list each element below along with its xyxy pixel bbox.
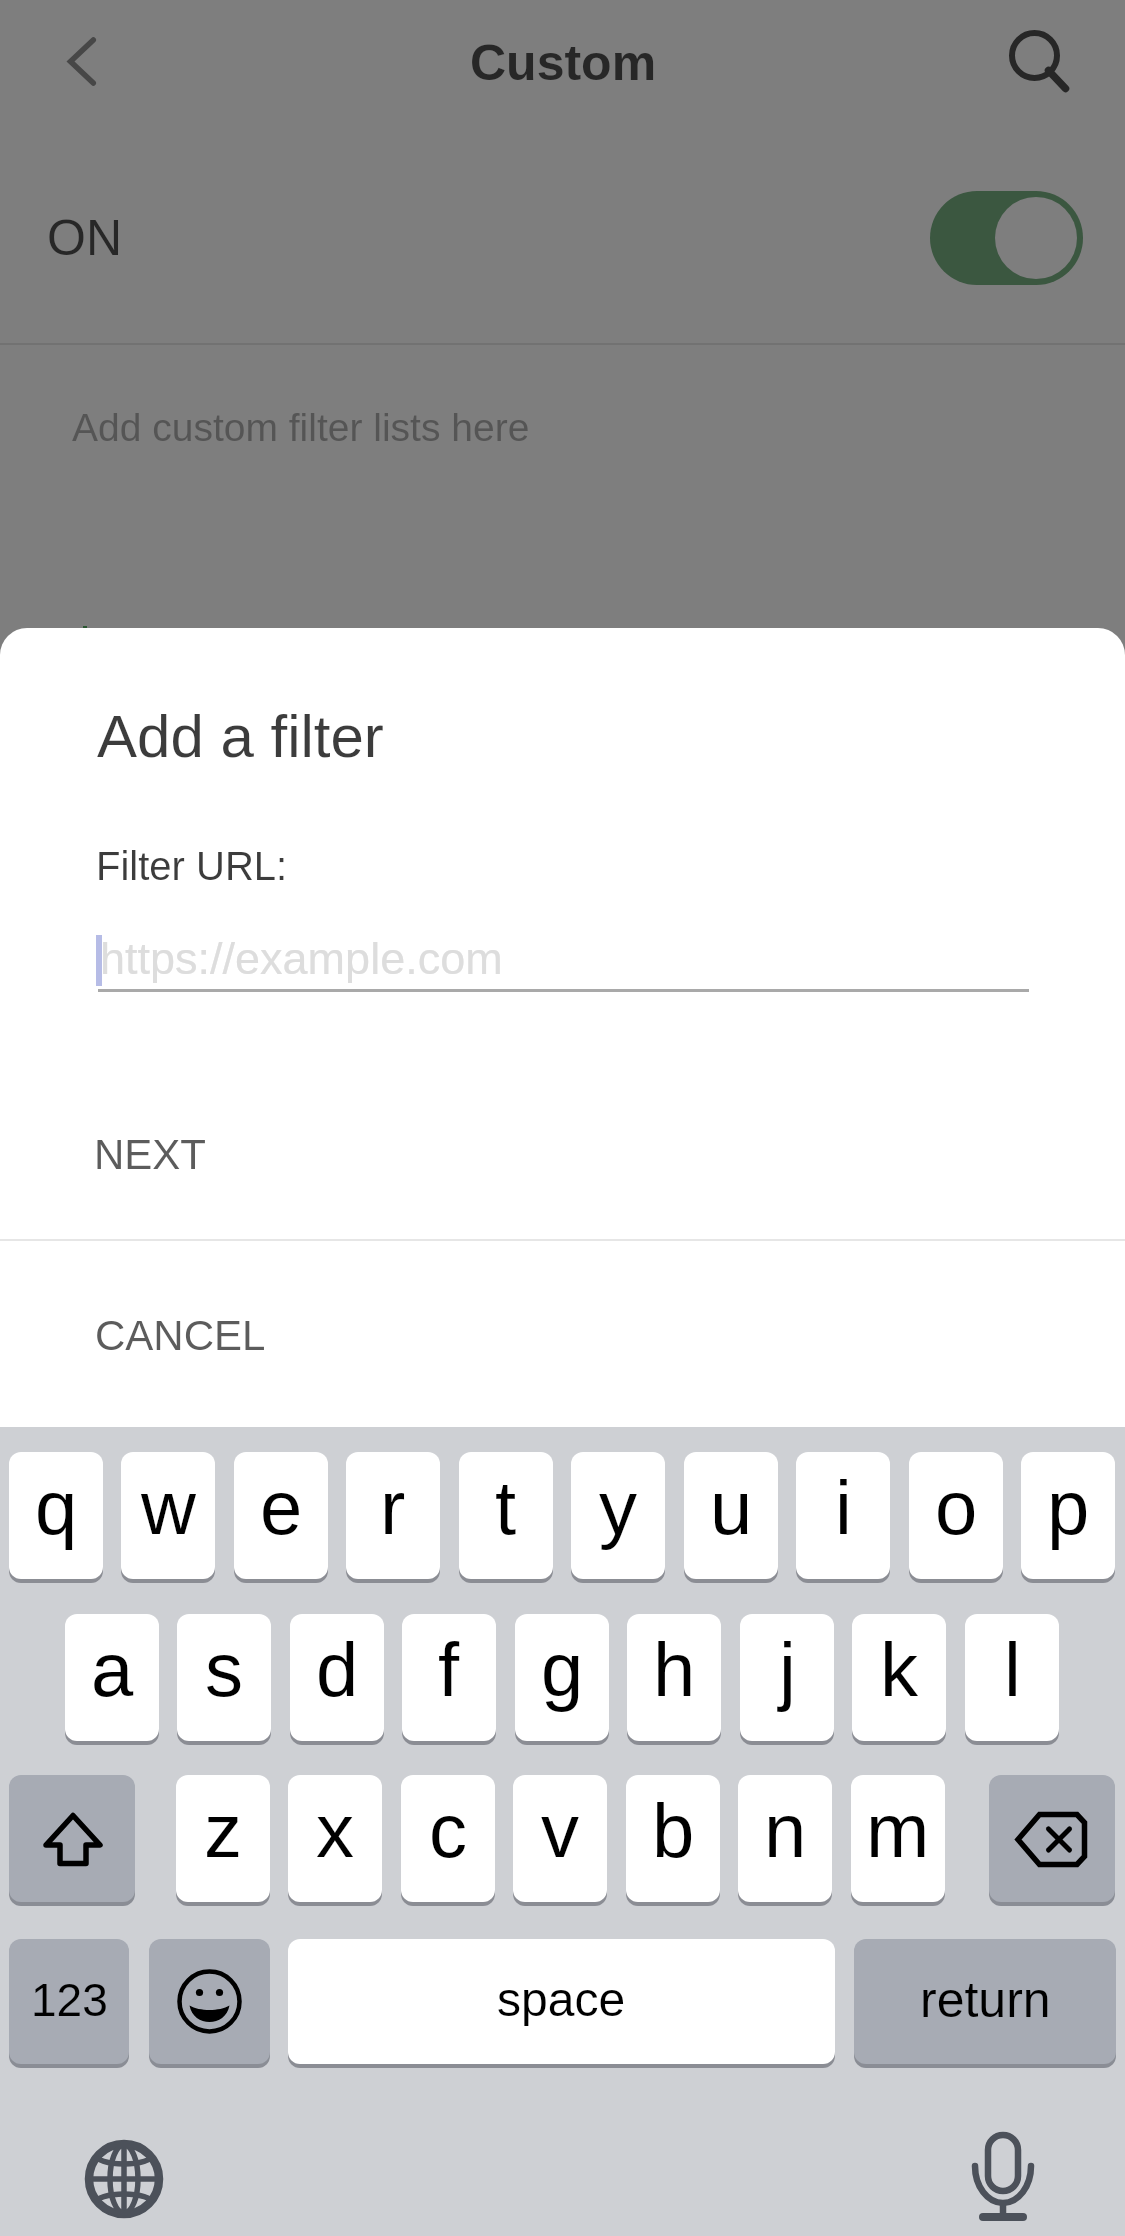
staticText: i [835,1465,852,1550]
staticText: https://example.com [100,933,503,983]
staticText: z [204,1788,242,1873]
staticText: q [35,1465,78,1550]
button[interactable]: s [177,1614,271,1741]
button[interactable]: f [402,1614,496,1741]
staticText: e [260,1465,303,1550]
staticText: Add a filter [97,703,384,770]
button[interactable]: h [627,1614,721,1741]
button[interactable]: a [65,1614,159,1741]
button[interactable]: m [851,1775,945,1902]
staticText: a [91,1627,134,1712]
button[interactable]: Add custom filter lists here [0,345,1125,485]
staticText: c [429,1788,467,1873]
staticText: h [653,1627,696,1712]
button[interactable]: p [1021,1452,1115,1579]
staticText: 123 [31,1974,108,2025]
staticText: CANCEL [95,1312,266,1359]
button[interactable]: l [965,1614,1059,1741]
button[interactable]: e [234,1452,328,1579]
button[interactable]: Next keyboard [64,2119,184,2236]
button[interactable]: x [288,1775,382,1902]
button[interactable]: r [346,1452,440,1579]
staticText: m [866,1788,930,1873]
button[interactable]: y [571,1452,665,1579]
button[interactable]: Backspace [989,1775,1115,1902]
staticText: s [205,1627,243,1712]
button[interactable]: NEXT [0,1098,1125,1239]
button[interactable]: i [796,1452,890,1579]
button[interactable]: g [515,1614,609,1741]
staticText: k [880,1627,918,1712]
staticText: f [438,1627,460,1712]
staticText: o [935,1465,978,1550]
button[interactable]: Back [12,7,122,117]
staticText: t [495,1465,517,1550]
button[interactable]: b [626,1775,720,1902]
staticText: ON [47,210,122,266]
staticText: Custom [470,35,657,91]
staticText: w [141,1465,196,1550]
button[interactable]: c [401,1775,495,1902]
button[interactable]: Enable filter list [905,166,1108,310]
button[interactable]: n [738,1775,832,1902]
staticText: l [1004,1627,1021,1712]
staticText: j [779,1627,796,1712]
button[interactable]: t [459,1452,553,1579]
staticText: Add custom filter lists here [72,406,530,450]
staticText: space [497,1973,626,2027]
button[interactable]: Emoji keyboard [149,1939,270,2064]
button[interactable]: Voice dictation [943,2115,1063,2235]
staticText: g [541,1627,584,1712]
button[interactable]: j [740,1614,834,1741]
button[interactable]: o [909,1452,1003,1579]
button[interactable]: v [513,1775,607,1902]
staticText: v [541,1788,579,1873]
staticText: return [920,1972,1051,2028]
staticText: d [316,1627,359,1712]
button[interactable]: Search [980,0,1090,110]
button[interactable]: u [684,1452,778,1579]
staticText: y [599,1465,637,1550]
staticText: n [764,1788,807,1873]
button[interactable]: k [852,1614,946,1741]
button[interactable]: d [290,1614,384,1741]
button[interactable]: w [121,1452,215,1579]
staticText: r [380,1465,406,1550]
staticText: x [316,1788,354,1873]
button[interactable]: space [288,1939,835,2064]
staticText: Filter URL: [96,844,288,889]
staticText: b [652,1788,695,1873]
button[interactable]: Shift [9,1775,135,1902]
staticText: u [710,1465,753,1550]
button[interactable]: CANCEL [0,1241,1125,1425]
button[interactable]: ON [0,128,1125,343]
button[interactable]: z [176,1775,270,1902]
button[interactable]: q [9,1452,103,1579]
button[interactable]: return [854,1939,1116,2064]
button[interactable]: 123 [9,1939,129,2064]
staticText: NEXT [94,1131,207,1178]
staticText: p [1047,1465,1090,1550]
